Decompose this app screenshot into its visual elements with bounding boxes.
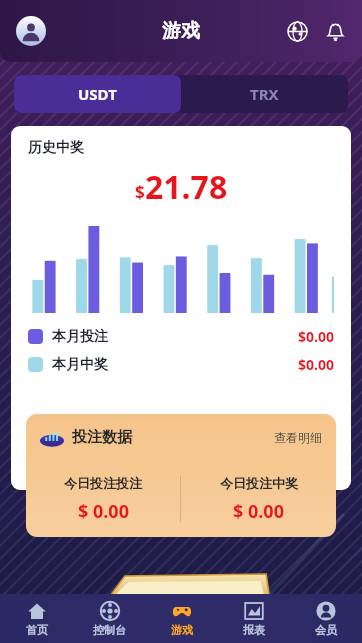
staticText: 21.78 <box>145 165 228 209</box>
staticText: 控制台 <box>93 623 126 637</box>
button[interactable]: USDT <box>14 75 181 113</box>
button[interactable]: 投注数据 <box>40 414 322 461</box>
staticText: 历史中奖 <box>28 139 84 157</box>
staticText: 报表 <box>243 623 265 637</box>
button[interactable]: 本月中奖 <box>28 355 334 374</box>
staticText: 游戏 <box>171 623 193 637</box>
button[interactable]: Language <box>282 16 312 46</box>
staticText: 查看明细 <box>274 430 322 445</box>
staticText: 本月中奖 <box>52 356 108 374</box>
staticText: $ 0.00 <box>78 499 129 524</box>
button[interactable]: TRX <box>181 75 348 113</box>
button[interactable]: 今日投注投注 <box>26 461 180 537</box>
staticText: USDT <box>78 84 117 104</box>
staticText: 今日投注投注 <box>64 475 142 491</box>
staticText: TRX <box>250 84 279 104</box>
staticText: 今日投注中奖 <box>220 475 298 491</box>
button[interactable]: 本月投注 <box>28 327 334 346</box>
staticText: 会员 <box>315 623 337 637</box>
button[interactable]: 今日投注中奖 <box>181 461 336 537</box>
staticText: $ <box>135 181 145 204</box>
button[interactable]: 游戏 <box>146 594 218 643</box>
button[interactable]: 首页 <box>0 594 73 643</box>
button[interactable]: 报表 <box>218 594 290 643</box>
staticText: 游戏 <box>162 19 200 43</box>
button[interactable]: 控制台 <box>73 594 146 643</box>
staticText: 投注数据 <box>72 428 132 447</box>
staticText: 本月投注 <box>52 328 108 346</box>
staticText: $0.00 <box>298 327 334 346</box>
staticText: $ 0.00 <box>233 499 284 524</box>
button[interactable]: 会员 <box>290 594 362 643</box>
button[interactable]: Notifications <box>320 16 350 46</box>
staticText: $0.00 <box>298 355 334 374</box>
staticText: 首页 <box>26 623 48 637</box>
button[interactable]: Profile <box>14 14 48 48</box>
